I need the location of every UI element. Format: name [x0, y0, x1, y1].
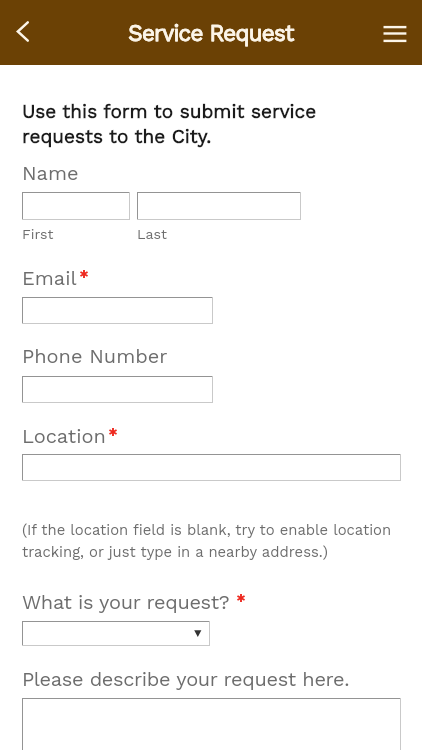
staticText: What is your request?	[22, 590, 230, 613]
button[interactable]: Email	[22, 297, 213, 324]
staticText: Use this form to submit service	[22, 100, 317, 122]
staticText: Phone Number	[22, 344, 168, 367]
button[interactable]: Request type	[22, 621, 210, 646]
button[interactable]: Phone number	[22, 376, 213, 403]
staticText: First	[22, 226, 54, 243]
staticText: Location	[22, 424, 106, 447]
staticText: requests to the City.	[22, 125, 212, 147]
button[interactable]: Location	[22, 454, 401, 481]
staticText: Service Request	[61, 20, 361, 50]
staticText: Please describe your request here.	[22, 667, 350, 690]
button[interactable]: First name	[22, 192, 130, 220]
staticText: (If the location field is blank, try to …	[22, 521, 392, 538]
button[interactable]: Menu	[375, 12, 415, 54]
button[interactable]: Back	[2, 11, 44, 53]
staticText: Service Request	[61, 20, 361, 50]
staticText: tracking, or just type in a nearby addre…	[22, 543, 328, 560]
button[interactable]: Request details	[22, 698, 401, 750]
staticText: Email	[22, 266, 77, 289]
button[interactable]: Last name	[137, 192, 301, 220]
staticText: Name	[22, 161, 79, 184]
staticText: Last	[137, 226, 167, 243]
